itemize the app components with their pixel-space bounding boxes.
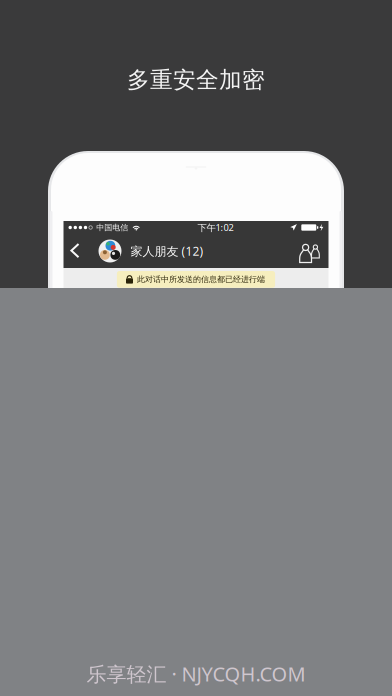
staticText: 中国电信	[96, 223, 128, 232]
staticText: 此对话中所发送的信息都已经进行端	[137, 274, 265, 284]
staticText: 乐享轻汇 · NJYCQH.COM	[86, 660, 305, 687]
staticText: 多重安全加密	[127, 66, 265, 94]
button[interactable]: Back	[63, 234, 98, 268]
staticText: 下午1:02	[197, 221, 233, 234]
staticText: 家人朋友 (12)	[130, 243, 203, 259]
button[interactable]: Group members	[288, 234, 328, 268]
